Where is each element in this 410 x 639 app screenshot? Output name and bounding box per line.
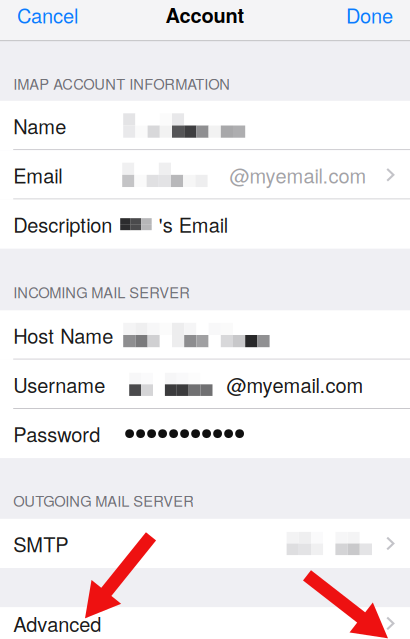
staticText: 's Email (159, 210, 228, 238)
staticText: Done (346, 0, 393, 29)
staticText: Cancel (17, 0, 78, 29)
button[interactable]: Advanced (0, 607, 410, 639)
staticText: @myemail.com (226, 370, 363, 399)
staticText: IMAP ACCOUNT INFORMATION (13, 73, 230, 94)
staticText: Password (13, 419, 100, 448)
staticText: @myemail.com (230, 160, 367, 189)
button[interactable]: SMTP (0, 519, 410, 568)
staticText: SMTP (13, 529, 68, 558)
staticText: Host Name (13, 321, 113, 349)
button[interactable]: Cancel (0, 0, 88, 30)
staticText: Account (165, 0, 244, 29)
staticText: Advanced (13, 609, 101, 638)
staticText: OUTGOING MAIL SERVER (13, 490, 194, 511)
staticText: Username (13, 370, 105, 399)
button[interactable]: Done (336, 0, 410, 30)
staticText: Name (13, 111, 66, 140)
staticText: INCOMING MAIL SERVER (13, 281, 190, 302)
staticText: Description (13, 210, 112, 238)
staticText: Email (13, 160, 62, 189)
